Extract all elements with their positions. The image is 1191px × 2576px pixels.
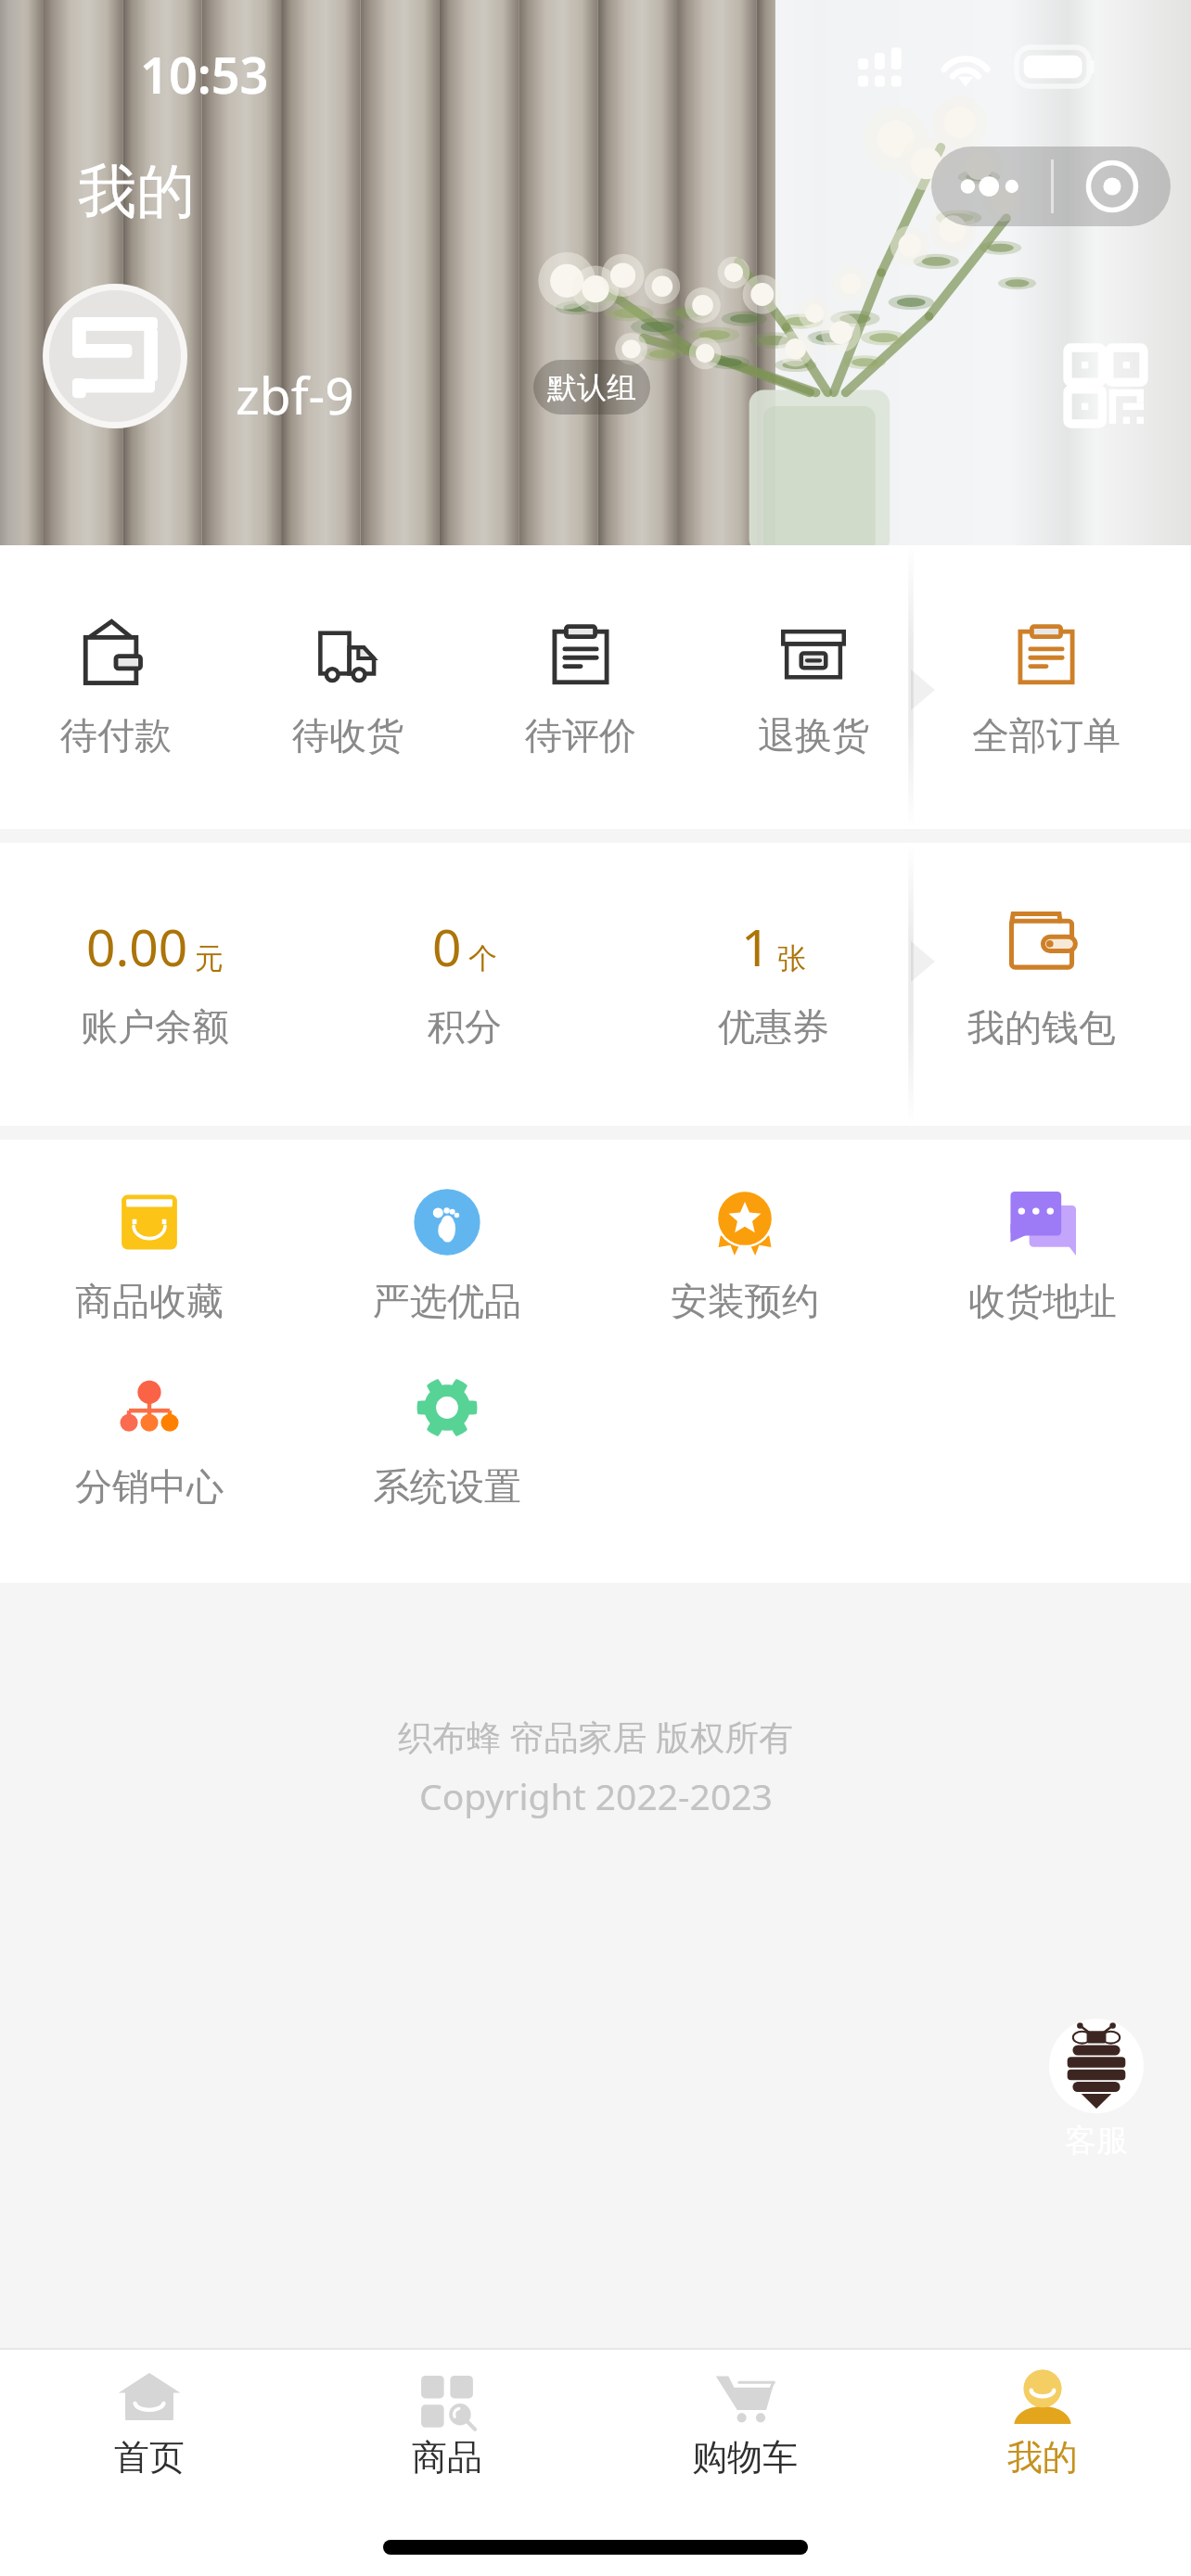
staticText: 全部订单	[972, 712, 1121, 759]
staticText: 商品收藏	[75, 1278, 224, 1324]
button[interactable]: Customer service	[1049, 2019, 1144, 2163]
staticText: 购物车	[692, 2435, 798, 2480]
staticText: 安装预约	[671, 1278, 819, 1324]
button[interactable]: 系统设置	[298, 1374, 595, 1510]
button[interactable]: 0	[310, 843, 619, 1126]
button[interactable]: QR code	[1068, 348, 1144, 424]
button[interactable]: 收货地址	[893, 1189, 1191, 1324]
button[interactable]: 退换货	[697, 545, 929, 829]
staticText: 我的	[1007, 2435, 1078, 2480]
staticText: 积分	[428, 1003, 502, 1050]
staticText: 首页	[114, 2435, 185, 2480]
staticText: Copyright 2022-2023	[419, 1771, 773, 1820]
staticText: 张	[777, 940, 806, 976]
button[interactable]: Mini program menu	[931, 147, 1171, 226]
staticText: 严选优品	[373, 1278, 521, 1324]
button[interactable]: 0.00	[0, 843, 310, 1126]
staticText: 系统设置	[373, 1463, 521, 1510]
button[interactable]: 安装预约	[595, 1189, 893, 1324]
staticText: 我的	[78, 155, 195, 228]
button[interactable]: 购物车	[595, 2372, 893, 2491]
staticText: 商品	[412, 2435, 482, 2480]
button[interactable]: 1	[619, 843, 928, 1126]
button[interactable]: 待付款	[0, 545, 232, 829]
button[interactable]: 我的钱包	[928, 843, 1191, 1126]
staticText: 待付款	[60, 712, 172, 759]
staticText: 默认组	[547, 369, 636, 406]
staticText: 0.00	[86, 912, 188, 981]
button[interactable]: 我的	[893, 2372, 1191, 2491]
button[interactable]: 分销中心	[0, 1374, 298, 1510]
button[interactable]: 待收货	[232, 545, 464, 829]
staticText: 待收货	[292, 712, 403, 759]
button[interactable]: 商品收藏	[0, 1189, 298, 1324]
staticText: 元	[195, 940, 224, 976]
staticText: 我的钱包	[967, 1004, 1116, 1051]
staticText: 退换货	[758, 712, 869, 759]
staticText: 待评价	[525, 712, 636, 759]
button[interactable]: Avatar	[43, 284, 187, 428]
staticText: 10:53	[140, 40, 269, 108]
staticText: zbf-9	[236, 360, 354, 429]
button[interactable]: 商品	[298, 2372, 595, 2491]
staticText: 织布蜂 帘品家居 版权所有	[398, 1713, 794, 1760]
staticText: 个	[468, 940, 497, 976]
button[interactable]: 默认组	[533, 360, 650, 414]
button[interactable]: 严选优品	[298, 1189, 595, 1324]
staticText: 收货地址	[968, 1278, 1117, 1324]
staticText: 0	[432, 912, 462, 981]
button[interactable]: 首页	[0, 2372, 298, 2491]
staticText: 优惠券	[718, 1003, 829, 1050]
staticText: 账户余额	[81, 1003, 229, 1050]
staticText: 客服	[1065, 2121, 1128, 2161]
staticText: 1	[741, 912, 771, 981]
button[interactable]: 待评价	[464, 545, 697, 829]
staticText: 分销中心	[75, 1463, 224, 1510]
button[interactable]: 全部订单	[929, 545, 1162, 829]
